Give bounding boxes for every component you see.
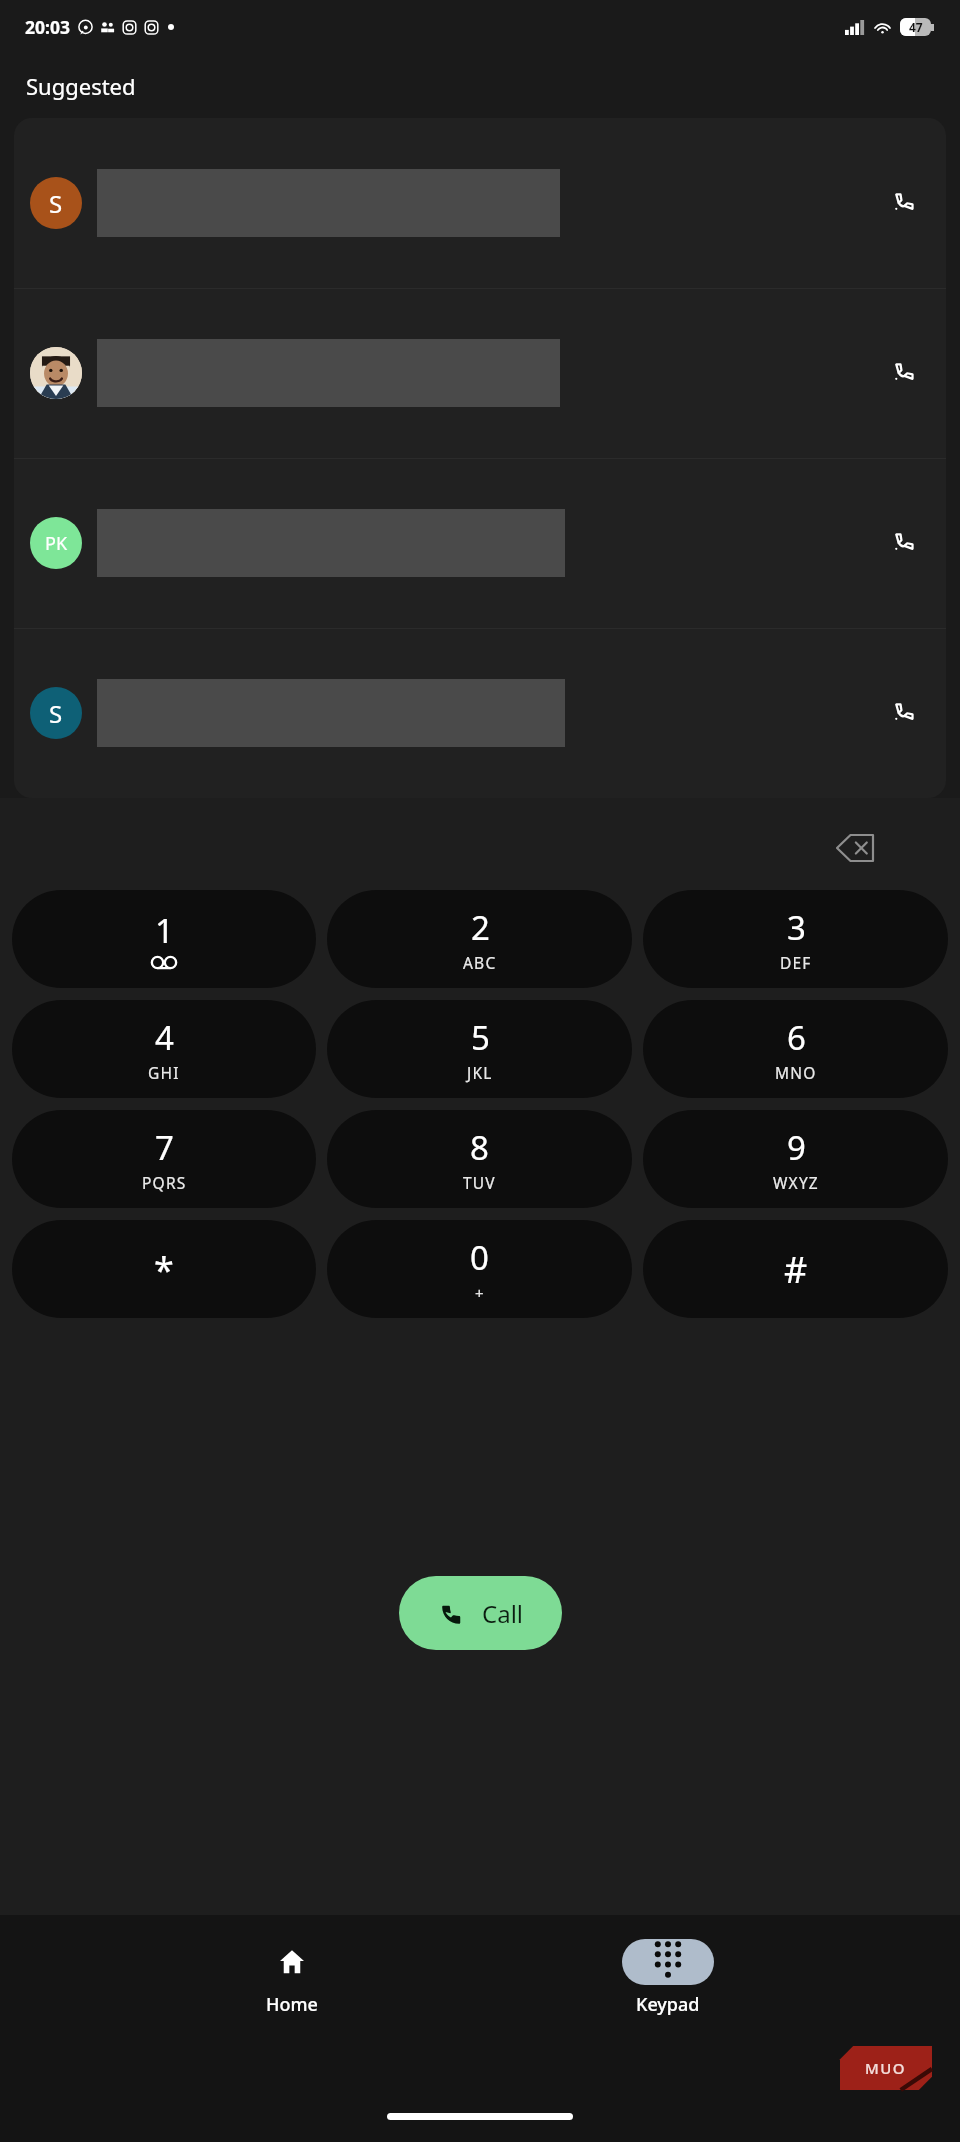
button[interactable]: Call contact (876, 345, 932, 401)
button[interactable]: 4 (12, 1000, 316, 1098)
staticText: ABC (463, 952, 497, 973)
button[interactable]: S (14, 628, 946, 798)
staticText: 4 (155, 1015, 174, 1060)
staticText: Home (266, 1992, 318, 2017)
button[interactable]: Home (192, 1933, 392, 2017)
button[interactable]: 5 (327, 1000, 632, 1098)
staticText: S (49, 187, 63, 220)
button[interactable]: 0 (327, 1220, 632, 1318)
staticText: 8 (470, 1125, 489, 1170)
button[interactable]: 3 (643, 890, 948, 988)
staticText: # (784, 1245, 808, 1294)
staticText: PK (45, 531, 68, 556)
staticText: Call (482, 1597, 524, 1630)
staticText: 20:03 (25, 15, 70, 39)
button[interactable]: Keypad (568, 1933, 768, 2017)
button[interactable]: Call contact (876, 685, 932, 741)
staticText: Keypad (636, 1992, 700, 2017)
button[interactable]: Call (399, 1576, 562, 1650)
staticText: 9 (787, 1125, 806, 1170)
button[interactable]: # (643, 1220, 948, 1318)
staticText: 6 (787, 1015, 806, 1060)
staticText: JKL (467, 1062, 493, 1083)
button[interactable]: Call contact (876, 175, 932, 231)
staticText: S (49, 697, 63, 730)
button[interactable]: PK (14, 458, 946, 628)
button[interactable]: 1 (12, 890, 316, 988)
button[interactable]: S (14, 118, 946, 288)
staticText: MUO (865, 2058, 907, 2078)
button[interactable]: 6 (643, 1000, 948, 1098)
staticText: TUV (463, 1172, 496, 1193)
button[interactable]: 8 (327, 1110, 632, 1208)
button[interactable]: Call contact (876, 515, 932, 571)
staticText: + (475, 1283, 484, 1303)
staticText: 47 (909, 19, 923, 35)
button[interactable]: 9 (643, 1110, 948, 1208)
button[interactable]: 2 (327, 890, 632, 988)
staticText: 0 (470, 1235, 489, 1280)
staticText: 2 (471, 905, 490, 950)
button[interactable]: 7 (12, 1110, 316, 1208)
staticText: Suggested (26, 71, 136, 101)
button[interactable]: Backspace (824, 824, 886, 872)
staticText: PQRS (142, 1172, 187, 1193)
staticText: 1 (155, 908, 174, 953)
button[interactable]: * (12, 1220, 316, 1318)
staticText: WXYZ (773, 1172, 819, 1193)
staticText: 7 (155, 1125, 174, 1170)
staticText: GHI (148, 1062, 180, 1083)
staticText: 5 (471, 1015, 490, 1060)
staticText: * (154, 1245, 174, 1294)
button[interactable]: Call contact (14, 288, 946, 458)
staticText: DEF (780, 952, 812, 973)
staticText: MNO (775, 1062, 817, 1083)
staticText: 3 (787, 905, 806, 950)
